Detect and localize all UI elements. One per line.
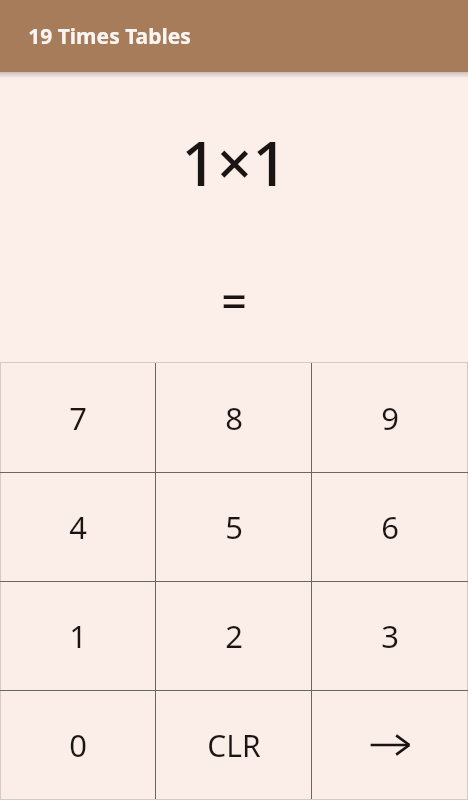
staticText: 4 [69,506,87,548]
staticText: 9 [381,397,399,439]
button[interactable]: 0 [1,691,155,799]
button[interactable]: CLR [156,691,311,799]
staticText: 5 [225,506,243,548]
button[interactable]: 6 [312,473,467,581]
button[interactable]: 5 [156,473,311,581]
button[interactable]: 1 [1,582,155,690]
staticText: CLR [207,725,261,766]
staticText: 8 [225,397,243,439]
button[interactable]: 7 [1,363,155,472]
staticText: 3 [381,615,399,657]
staticText: = [221,270,247,331]
button[interactable]: 2 [156,582,311,690]
staticText: 6 [381,506,399,548]
staticText: 19 Times Tables [28,22,191,51]
button[interactable]: 9 [312,363,467,472]
staticText: 2 [225,615,243,657]
staticText: 1×1 [181,120,288,204]
staticText: 0 [69,724,87,766]
button[interactable]: 3 [312,582,467,690]
staticText: 7 [69,397,87,439]
staticText: 1 [69,615,87,657]
button[interactable]: Enter [312,691,467,799]
button[interactable]: 8 [156,363,311,472]
button[interactable]: 4 [1,473,155,581]
